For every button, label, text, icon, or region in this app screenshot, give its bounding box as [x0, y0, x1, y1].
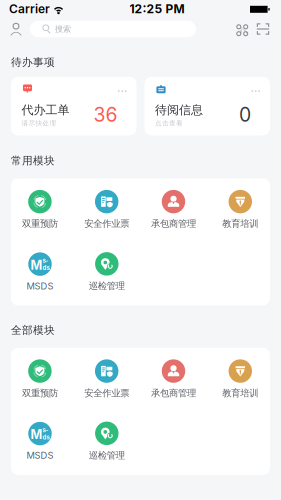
staticText: 点击查看 [155, 119, 183, 127]
staticText: 承包商管理 [151, 387, 196, 399]
staticText: MSDS [26, 450, 53, 461]
button[interactable]: 个人中心 [2, 18, 30, 40]
staticText: 承包商管理 [151, 218, 196, 230]
staticText: 巡检管理 [89, 450, 125, 461]
staticText: 12:25 PM [129, 2, 184, 16]
button[interactable]: 巡检管理 [73, 422, 140, 461]
button[interactable]: M [7, 422, 73, 461]
staticText: 搜索 [55, 24, 71, 34]
button[interactable]: 双重预防 [6, 359, 73, 399]
staticText: sds [42, 257, 49, 271]
staticText: MSDS [26, 280, 53, 292]
button[interactable]: 安全作业票 [73, 190, 140, 230]
staticText: 36 [93, 103, 117, 126]
staticText: 双重预防 [22, 387, 58, 399]
staticText: M [30, 427, 42, 442]
staticText: 双重预防 [22, 218, 58, 230]
staticText: 0 [239, 103, 251, 126]
staticText: 请尽快处理 [21, 119, 56, 127]
staticText: 安全作业票 [84, 218, 129, 230]
button[interactable]: 应用 [230, 18, 252, 40]
button[interactable]: M [7, 252, 73, 292]
button[interactable]: 代办工单 [11, 77, 136, 135]
staticText: 全部模块 [11, 323, 55, 337]
button[interactable]: 承包商管理 [140, 359, 207, 399]
staticText: 教育培训 [222, 218, 258, 230]
staticText: 教育培训 [222, 387, 258, 399]
staticText: 常用模块 [11, 154, 55, 167]
button[interactable]: 双重预防 [6, 190, 73, 230]
button[interactable]: 教育培训 [207, 190, 274, 230]
staticText: sds [42, 426, 49, 441]
staticText: M [30, 257, 42, 273]
button[interactable]: 待阅信息 [144, 77, 270, 135]
button[interactable]: 搜索 [30, 21, 196, 37]
staticText: 巡检管理 [89, 280, 125, 292]
button[interactable]: 承包商管理 [140, 190, 207, 230]
button[interactable]: 安全作业票 [73, 359, 140, 399]
staticText: 待阅信息 [155, 102, 203, 117]
button[interactable]: 巡检管理 [73, 252, 140, 292]
staticText: 安全作业票 [84, 387, 129, 399]
staticText: 待办事项 [11, 55, 55, 69]
button[interactable]: 扫一扫 [252, 18, 274, 40]
staticText: 代办工单 [21, 102, 69, 117]
button[interactable]: 教育培训 [207, 359, 274, 399]
staticText: Carrier [9, 2, 50, 16]
